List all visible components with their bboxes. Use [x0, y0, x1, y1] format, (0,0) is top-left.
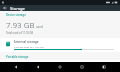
staticText: Internal storage — [14, 40, 39, 44]
button[interactable]: Screenshot — [98, 62, 110, 72]
staticText: Storage — [10, 6, 25, 11]
button[interactable]: Recent apps — [76, 62, 88, 72]
button[interactable]: Internal storage — [0, 38, 120, 52]
staticText: 7.93 GB — [6, 19, 35, 30]
staticText: Total used of 11.55 GB — [6, 31, 34, 35]
staticText: Device storage — [6, 13, 26, 17]
staticText: used — [36, 25, 43, 29]
button[interactable]: Back — [32, 62, 44, 72]
button[interactable]: Navigate up — [0, 5, 10, 11]
staticText: Portable storage — [6, 55, 29, 59]
button[interactable]: Back — [10, 62, 22, 72]
button[interactable]: Home — [54, 62, 66, 72]
staticText: 7.93 GB used of 11.55 GB — [14, 45, 44, 48]
